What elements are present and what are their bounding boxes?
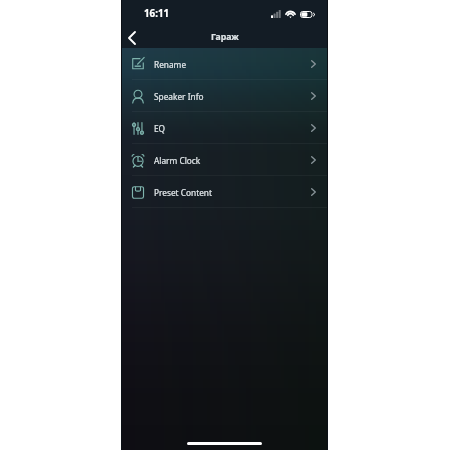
staticText: Preset Content	[154, 187, 212, 198]
button[interactable]: Speaker Info	[121, 80, 328, 112]
button[interactable]: Rename	[121, 48, 328, 80]
button[interactable]: Alarm Clock	[121, 144, 328, 176]
button[interactable]: Back	[121, 27, 143, 49]
staticText: Speaker Info	[154, 91, 204, 102]
staticText: Alarm Clock	[154, 155, 201, 166]
staticText: Rename	[154, 59, 187, 70]
staticText: 16:11	[144, 7, 170, 20]
staticText: EQ	[154, 123, 166, 134]
button[interactable]: EQ	[121, 112, 328, 144]
button[interactable]: Preset Content	[121, 176, 328, 208]
staticText: Гараж	[211, 31, 239, 43]
